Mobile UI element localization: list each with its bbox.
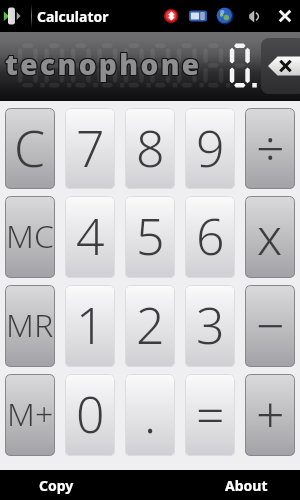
button[interactable]: Start [1,2,29,30]
staticText: tecnophone [5,46,202,84]
button[interactable]: 4 [65,196,115,278]
staticText: 5 [136,202,165,270]
staticText: 8 [136,114,165,182]
button[interactable]: 3 [185,285,235,367]
staticText: M+ [7,392,54,436]
staticText: Copy [39,476,74,495]
button[interactable]: 5 [125,196,175,278]
staticText: 2 [136,291,165,359]
staticText: MC [6,214,54,258]
staticText: tecnophone [4,46,201,84]
button[interactable]: Internet [216,7,234,25]
button[interactable]: . [125,374,175,456]
button[interactable]: 2 [125,285,175,367]
button[interactable]: Copy [0,470,113,500]
staticText: 3 [196,291,225,359]
staticText: tecnophone [6,45,203,83]
button[interactable]: 1 [65,285,115,367]
button[interactable]: 0 [65,374,115,456]
button[interactable]: Wi-Fi [189,7,207,25]
button[interactable]: 8 [125,108,175,189]
button[interactable]: + [245,374,295,456]
staticText: = [196,380,225,448]
staticText: 7 [76,114,105,182]
button[interactable]: ÷ [245,108,295,189]
staticText: C [14,114,46,182]
staticText: . [144,380,157,448]
staticText: 4 [76,202,105,270]
button[interactable]: Volume [244,8,261,25]
button[interactable]: C [5,108,55,189]
staticText: tecnophone [4,44,201,82]
staticText: 9 [196,114,225,182]
button[interactable]: = [185,374,235,456]
staticText: Calculator [37,7,109,26]
button[interactable]: MR [5,285,55,367]
staticText: tecnophone [4,45,201,83]
staticText: + [256,380,285,448]
staticText: MR [6,303,54,347]
staticText: x [257,202,283,270]
button[interactable]: x [245,196,295,278]
staticText: tecnophone [5,44,202,82]
button[interactable]: − [245,285,295,367]
staticText: About [225,476,268,495]
button[interactable]: MC [5,196,55,278]
button[interactable]: M+ [5,374,55,456]
button[interactable]: Close [277,8,293,24]
button[interactable]: Bluetooth off [164,9,178,23]
button[interactable]: About [192,470,300,500]
staticText: tecnophone [6,46,203,84]
button[interactable]: Backspace [261,38,300,94]
staticText: 1 [76,291,105,359]
staticText: 0 [76,380,105,448]
button[interactable]: 9 [185,108,235,189]
staticText: − [256,291,285,359]
staticText: tecnophone [6,44,203,82]
button[interactable]: 6 [185,196,235,278]
button[interactable]: 7 [65,108,115,189]
staticText: 6 [196,202,225,270]
staticText: tecnophone [5,45,202,83]
staticText: ÷ [256,114,285,182]
